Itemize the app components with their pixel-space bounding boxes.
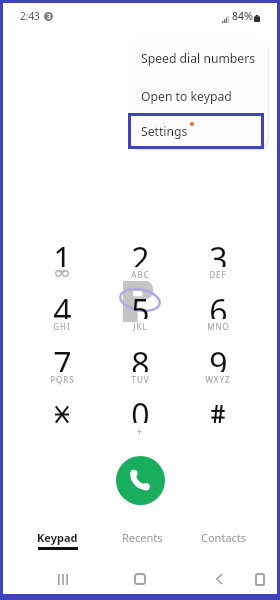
button[interactable]: 2 xyxy=(103,237,177,283)
button[interactable]: Contacts xyxy=(184,519,264,553)
staticText: 1 xyxy=(53,237,72,267)
staticText: TUV xyxy=(131,374,150,385)
staticText: 8 xyxy=(131,342,150,372)
staticText: MNO xyxy=(207,321,230,332)
staticText: 4 xyxy=(53,289,72,319)
staticText: 0 xyxy=(131,393,150,423)
button[interactable]: 1 xyxy=(25,237,99,283)
staticText: 7 xyxy=(53,342,72,372)
button[interactable]: Settings xyxy=(128,114,268,149)
staticText: Contacts xyxy=(201,530,247,545)
button[interactable]: 7 xyxy=(25,342,99,388)
button[interactable] xyxy=(181,393,255,439)
button[interactable]: 0 xyxy=(103,393,177,439)
button[interactable] xyxy=(25,393,99,439)
staticText: 2:43 xyxy=(20,9,40,23)
staticText: 3 xyxy=(47,12,51,21)
staticText: DEF xyxy=(209,269,227,280)
staticText: GHI xyxy=(53,321,71,332)
button[interactable]: Call xyxy=(116,456,165,505)
staticText: Keypad xyxy=(37,530,78,545)
staticText: ABC xyxy=(131,269,150,280)
button[interactable]: 9 xyxy=(181,342,255,388)
staticText: 2 xyxy=(131,237,150,267)
button[interactable]: Speed dial numbers xyxy=(128,38,268,78)
button[interactable]: Recent apps xyxy=(43,563,83,595)
button[interactable]: 6 xyxy=(181,289,255,335)
staticText: JKL xyxy=(133,321,148,332)
staticText: Recents xyxy=(122,530,163,545)
staticText: + xyxy=(137,425,143,437)
button[interactable]: Open to keypad xyxy=(128,78,268,114)
staticText: PQRS xyxy=(50,374,75,385)
staticText: 5 xyxy=(131,289,150,319)
button[interactable]: 5 xyxy=(103,289,177,335)
staticText: Speed dial numbers xyxy=(141,50,256,67)
button[interactable]: 4 xyxy=(25,289,99,335)
staticText: 3 xyxy=(209,237,228,267)
staticText: WXYZ xyxy=(205,374,231,385)
button[interactable]: Recents xyxy=(102,519,182,553)
button[interactable]: Back xyxy=(199,563,239,595)
staticText: Open to keypad xyxy=(141,88,232,105)
button[interactable]: Home xyxy=(120,563,160,595)
staticText: 6 xyxy=(209,289,228,319)
button[interactable]: 8 xyxy=(103,342,177,388)
button[interactable]: Keypad xyxy=(17,519,97,553)
staticText: 84% xyxy=(232,9,253,23)
staticText: 9 xyxy=(209,342,228,372)
staticText: Settings xyxy=(141,123,188,140)
button[interactable]: Device xyxy=(240,563,280,595)
button[interactable]: 3 xyxy=(181,237,255,283)
